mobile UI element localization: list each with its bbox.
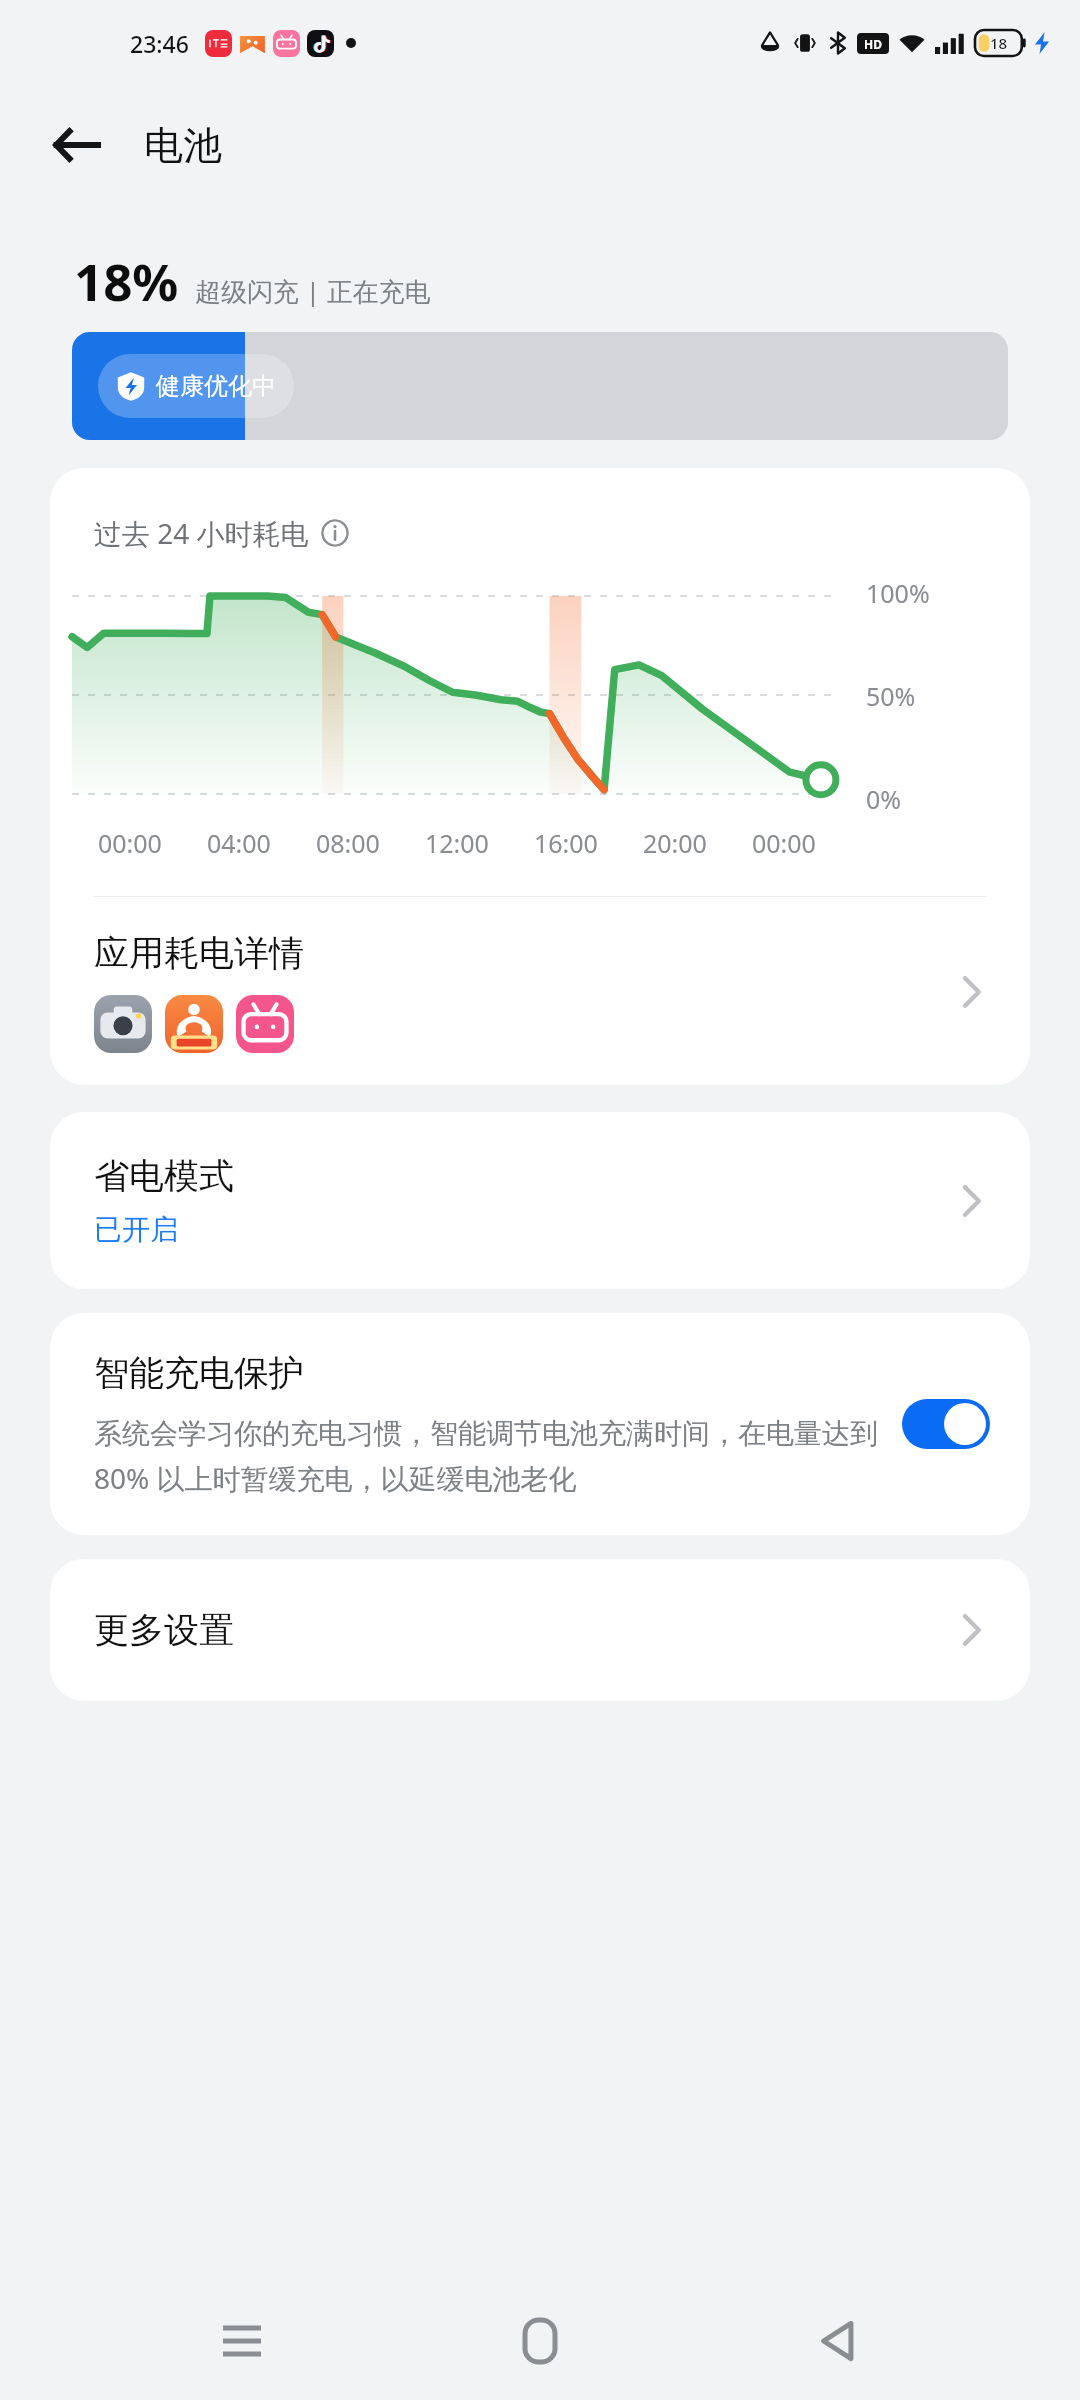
staticText: 08:00 [316,826,380,860]
staticText: 系统会学习你的充电习惯，智能调节电池充满时间，在电量达到 80% 以上时暂缓充电… [94,1413,878,1497]
staticText: 0% [866,782,902,816]
staticText: 健康优化中 [156,371,276,401]
staticText: 更多设置 [94,1608,948,1652]
staticText: HD [864,36,882,52]
staticText: 00:00 [752,826,816,860]
staticText: 00:00 [98,826,162,860]
button[interactable]: 说明 [321,519,349,547]
staticText: 23:46 [130,28,189,59]
button[interactable]: Home [484,2285,596,2397]
button[interactable]: Back [782,2285,894,2397]
button[interactable]: 更多设置 [50,1559,1030,1701]
button[interactable]: 应用耗电详情 [50,897,1030,1085]
staticText: 应用耗电详情 [94,931,304,975]
staticText: 智能充电保护 [94,1351,304,1395]
staticText: 过去 24 小时耗电 [94,514,309,552]
button[interactable]: 智能充电保护开关 [902,1399,990,1449]
staticText: 18% [74,246,179,315]
staticText: 已开启 [94,1212,178,1247]
staticText: 电池 [144,121,222,170]
staticText: 省电模式 [94,1154,234,1198]
button[interactable]: Back [38,107,114,183]
staticText: 12:00 [425,826,489,860]
staticText: 50% [866,679,916,713]
staticText: 20:00 [643,826,707,860]
button[interactable]: 省电模式 [50,1112,1030,1289]
staticText: 超级闪充 | 正在充电 [195,273,431,309]
button[interactable]: 健康优化中 [72,332,1008,440]
staticText: 100% [866,576,930,610]
button[interactable]: Recents [186,2285,298,2397]
staticText: 18 [990,33,1008,53]
staticText: 04:00 [207,826,271,860]
staticText: 16:00 [534,826,598,860]
